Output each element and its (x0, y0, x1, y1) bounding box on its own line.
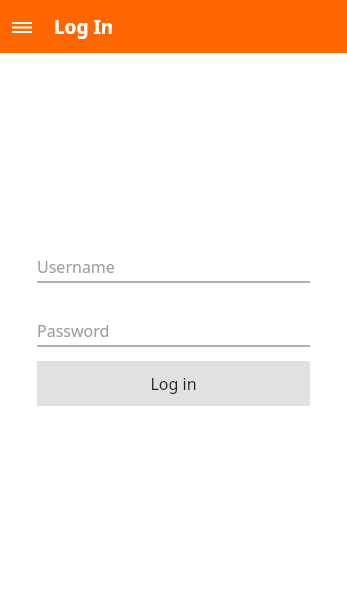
button[interactable]: Log in (37, 361, 310, 406)
button[interactable]: Open navigation menu (8, 13, 36, 41)
staticText: Username (37, 256, 115, 278)
staticText: Log In (54, 14, 114, 40)
staticText: Log in (150, 373, 197, 395)
button[interactable]: Password (37, 317, 310, 347)
button[interactable]: Username (37, 253, 310, 283)
staticText: Password (37, 320, 110, 342)
